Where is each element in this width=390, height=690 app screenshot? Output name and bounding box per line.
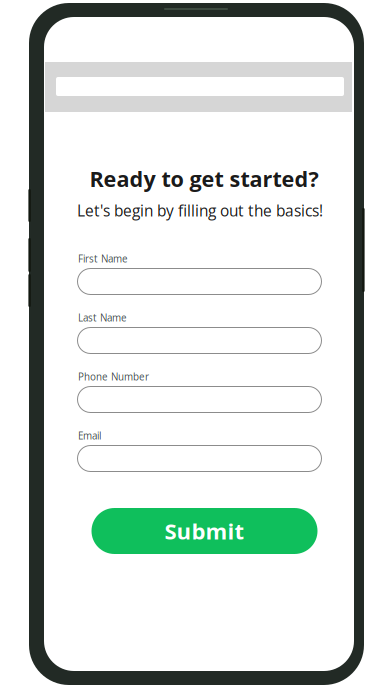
- staticText: Last Name: [78, 311, 127, 324]
- button[interactable]: Submit: [91, 508, 317, 554]
- staticText: Let's begin by filling out the basics!: [77, 200, 323, 221]
- staticText: First Name: [78, 252, 128, 265]
- staticText: Ready to get started?: [89, 164, 318, 193]
- staticText: Email: [78, 429, 101, 442]
- staticText: Submit: [164, 516, 244, 546]
- staticText: Phone Number: [78, 370, 149, 383]
